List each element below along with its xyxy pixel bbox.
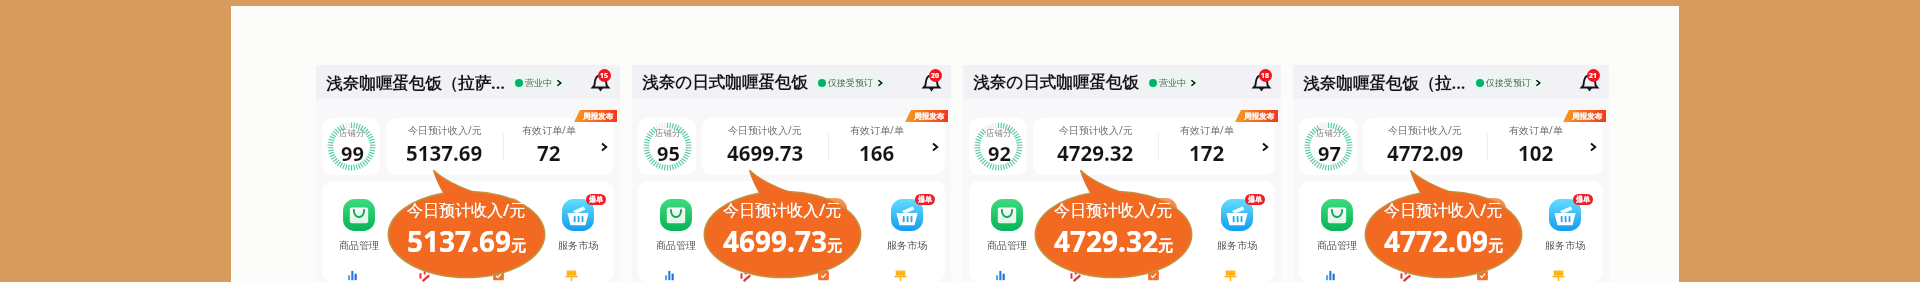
button[interactable]: 周报发布 xyxy=(574,110,617,122)
staticText: 15 xyxy=(600,71,609,81)
button[interactable]: 爆单 xyxy=(1198,198,1275,252)
button[interactable]: 仅接受预订 xyxy=(814,75,888,90)
button[interactable]: 店铺分 xyxy=(1299,118,1357,175)
staticText: 4729.32 xyxy=(1054,222,1158,260)
button[interactable]: 今日预计收入/元 xyxy=(1363,118,1603,175)
staticText: 有效订单/单 xyxy=(522,123,576,137)
staticText: 今日预计收入/元 xyxy=(408,123,482,137)
staticText: 97 xyxy=(1318,140,1341,167)
staticText: 商品管理 xyxy=(339,239,379,252)
staticText: 元 xyxy=(511,237,526,256)
button[interactable]: Tool 6 xyxy=(1121,267,1198,282)
button[interactable]: Tool 7 xyxy=(868,267,945,282)
button[interactable]: 顾客管理 xyxy=(714,198,791,252)
staticText: 5137.69 xyxy=(407,222,511,260)
staticText: 4772.09 xyxy=(1387,139,1464,167)
button[interactable]: Tool 4 xyxy=(1299,267,1375,282)
button[interactable]: 店铺分 xyxy=(638,118,696,175)
button[interactable]: 活动中心 xyxy=(1121,198,1198,252)
staticText: 周报发布 xyxy=(1244,112,1274,121)
staticText: 仅接受预订 xyxy=(1486,77,1531,88)
staticText: 4729.32 xyxy=(1057,139,1134,167)
button[interactable]: 周报发布 xyxy=(1235,110,1278,122)
staticText: 今日预计收入/元 xyxy=(1054,199,1173,221)
button[interactable]: 商品管理 xyxy=(322,198,395,252)
staticText: 店铺分 xyxy=(339,128,365,139)
button[interactable]: 爆单 xyxy=(541,198,614,252)
button[interactable]: 仅接受预订 xyxy=(1472,75,1546,90)
button[interactable]: 顾客管理 xyxy=(395,198,468,252)
button[interactable]: Tool 4 xyxy=(969,267,1045,282)
staticText: 顾客管理 xyxy=(733,239,773,252)
button[interactable]: Tool 5 xyxy=(1045,267,1121,282)
button[interactable]: Tool 5 xyxy=(1375,267,1451,282)
button[interactable]: 顾客管理 xyxy=(1045,198,1121,252)
staticText: 72 xyxy=(537,139,561,167)
staticText: 有效订单/单 xyxy=(1509,123,1563,137)
button[interactable]: Notifications xyxy=(587,69,613,95)
button[interactable]: Tool 6 xyxy=(468,267,541,282)
staticText: 爆单 xyxy=(1576,195,1590,204)
staticText: 商品管理 xyxy=(987,239,1027,252)
button[interactable]: Tool 7 xyxy=(541,267,614,282)
button[interactable]: 商品管理 xyxy=(969,198,1045,252)
button[interactable]: 营业中 xyxy=(1145,75,1201,90)
button[interactable]: 活动中心 xyxy=(468,198,541,252)
button[interactable]: Tool 5 xyxy=(714,267,791,282)
staticText: 18 xyxy=(1261,71,1270,81)
staticText: 元 xyxy=(1158,237,1173,256)
staticText: 店铺分 xyxy=(1316,128,1342,139)
button[interactable]: 今日预计收入/元 xyxy=(702,118,945,175)
staticText: 5137.69 xyxy=(406,139,483,167)
staticText: 周报发布 xyxy=(914,112,944,121)
button[interactable]: Tool 6 xyxy=(1451,267,1527,282)
button[interactable]: Notifications xyxy=(1248,69,1274,95)
staticText: 有效订单/单 xyxy=(850,123,904,137)
button[interactable]: 爆单 xyxy=(1527,198,1603,252)
staticText: 21 xyxy=(1589,71,1598,81)
staticText: 92 xyxy=(988,140,1011,167)
button[interactable]: 活动中心 xyxy=(1451,198,1527,252)
button[interactable]: 今日预计收入/元 xyxy=(386,118,614,175)
staticText: 顾客管理 xyxy=(412,239,452,252)
button[interactable]: 周报发布 xyxy=(905,110,948,122)
staticText: 166 xyxy=(859,139,895,167)
button[interactable]: 周报发布 xyxy=(1563,110,1606,122)
staticText: 商品管理 xyxy=(1317,239,1357,252)
staticText: 店铺分 xyxy=(655,128,681,139)
button[interactable]: 顾客管理 xyxy=(1375,198,1451,252)
button[interactable]: 活动中心 xyxy=(791,198,868,252)
staticText: 元 xyxy=(1488,237,1503,256)
staticText: 浅奈の日式咖喱蛋包饭 xyxy=(973,72,1139,93)
staticText: 仅接受预订 xyxy=(828,77,873,88)
staticText: 4699.73 xyxy=(727,139,804,167)
staticText: 服务市场 xyxy=(1545,239,1585,252)
button[interactable]: Tool 6 xyxy=(791,267,868,282)
button[interactable]: Notifications xyxy=(918,69,944,95)
staticText: 活动中心 xyxy=(485,239,525,252)
staticText: 活动中心 xyxy=(1469,239,1509,252)
button[interactable]: Tool 7 xyxy=(1198,267,1275,282)
button[interactable]: 店铺分 xyxy=(969,118,1027,175)
staticText: 今日预计收入/元 xyxy=(1384,199,1503,221)
button[interactable]: Tool 4 xyxy=(638,267,714,282)
button[interactable]: 营业中 xyxy=(511,75,567,90)
staticText: 4772.09 xyxy=(1384,222,1488,260)
button[interactable]: 商品管理 xyxy=(1299,198,1375,252)
staticText: 服务市场 xyxy=(558,239,598,252)
button[interactable]: Tool 7 xyxy=(1527,267,1603,282)
button[interactable]: Tool 4 xyxy=(322,267,395,282)
staticText: 95 xyxy=(657,140,680,167)
staticText: 顾客管理 xyxy=(1063,239,1103,252)
button[interactable]: Notifications xyxy=(1576,69,1602,95)
staticText: 今日预计收入/元 xyxy=(1388,123,1462,137)
staticText: 浅奈咖喱蛋包饭（拉萨... xyxy=(326,71,505,94)
staticText: 服务市场 xyxy=(887,239,927,252)
button[interactable]: 店铺分 xyxy=(322,118,380,175)
button[interactable]: 商品管理 xyxy=(638,198,714,252)
staticText: 元 xyxy=(827,237,842,256)
button[interactable]: Tool 5 xyxy=(395,267,468,282)
staticText: 营业中 xyxy=(525,77,552,88)
button[interactable]: 爆单 xyxy=(868,198,945,252)
button[interactable]: 今日预计收入/元 xyxy=(1033,118,1275,175)
